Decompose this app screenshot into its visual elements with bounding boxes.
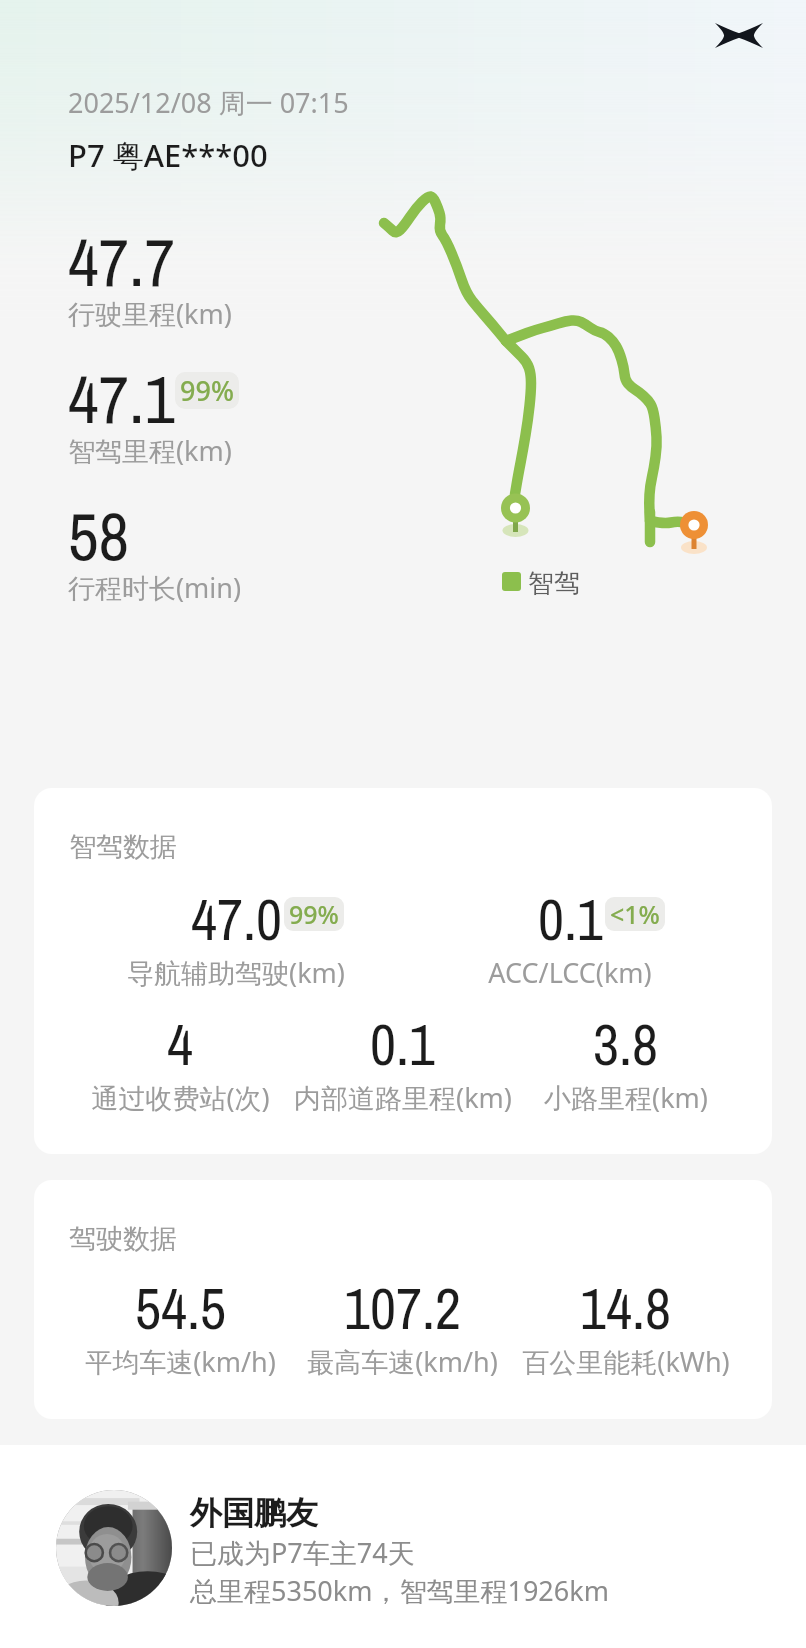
staticText: 4 xyxy=(167,1006,193,1083)
staticText: 行程时长(min) xyxy=(68,569,242,606)
staticText: 内部道路里程(km) xyxy=(294,1079,512,1116)
staticText: 58 xyxy=(68,491,130,581)
staticText: 47.7 xyxy=(68,217,175,307)
staticText: 0.1 xyxy=(370,1006,435,1083)
staticText: P7 粤AE***00 xyxy=(68,134,268,176)
staticText: 最高车速(km/h) xyxy=(307,1343,498,1380)
staticText: 47.1 xyxy=(68,354,175,444)
staticText: 行驶里程(km) xyxy=(68,295,232,332)
staticText: 智驾 xyxy=(528,567,580,600)
staticText: 已成为P7车主74天 xyxy=(190,1534,415,1571)
staticText: 百公里能耗(kWh) xyxy=(522,1343,730,1380)
staticText: 小路里程(km) xyxy=(544,1079,708,1116)
staticText: 智驾里程(km) xyxy=(68,432,232,469)
button[interactable]: 智驾数据 xyxy=(34,788,772,1154)
staticText: 通过收费站(次) xyxy=(91,1079,270,1116)
staticText: 107.2 xyxy=(344,1270,461,1347)
staticText: 平均车速(km/h) xyxy=(85,1343,276,1380)
staticText: 99% xyxy=(180,372,234,409)
staticText: 总里程5350km，智驾里程1926km xyxy=(190,1572,609,1609)
staticText: 驾驶数据 xyxy=(69,1222,177,1256)
staticText: 3.8 xyxy=(593,1006,658,1083)
button[interactable]: XPeng logo xyxy=(715,23,763,48)
staticText: 14.8 xyxy=(580,1270,671,1347)
staticText: 外国鹏友 xyxy=(190,1493,318,1533)
staticText: ACC/LCC(km) xyxy=(488,954,652,991)
staticText: 99% xyxy=(289,897,339,931)
staticText: <1% xyxy=(610,897,660,931)
staticText: 智驾数据 xyxy=(69,830,177,864)
staticText: 2025/12/08 周一 07:15 xyxy=(68,84,349,121)
staticText: 0.1 xyxy=(538,881,603,958)
staticText: 54.5 xyxy=(135,1270,226,1347)
button[interactable]: 驾驶数据 xyxy=(34,1180,772,1419)
staticText: 47.0 xyxy=(191,881,282,958)
button[interactable]: 外国鹏友 xyxy=(0,1445,806,1648)
staticText: 导航辅助驾驶(km) xyxy=(127,954,345,991)
